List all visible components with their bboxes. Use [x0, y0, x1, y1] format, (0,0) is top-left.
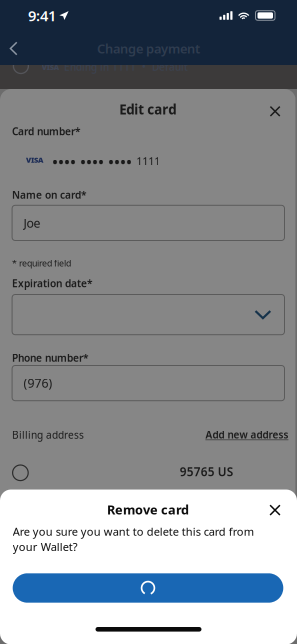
- staticText: Phone number*: [12, 351, 89, 365]
- staticText: Joe: [24, 214, 41, 231]
- staticText: Remove card: [107, 501, 189, 518]
- staticText: Card number*: [12, 124, 81, 138]
- button[interactable]: Add new address: [205, 428, 288, 441]
- staticText: (976): [24, 375, 53, 391]
- button[interactable]: Remove card: [13, 573, 283, 603]
- staticText: Edit card: [119, 100, 176, 118]
- staticText: Billing address: [12, 428, 84, 442]
- staticText: Expiration date*: [12, 276, 93, 290]
- staticText: 1111: [136, 154, 160, 168]
- button[interactable]: Close: [262, 497, 288, 523]
- button[interactable]: Back: [0, 35, 27, 61]
- staticText: * required field: [12, 257, 71, 269]
- staticText: 95765 US: [180, 464, 233, 480]
- staticText: Ending in 1111 • Default: [64, 60, 188, 74]
- staticText: Add new address: [205, 428, 288, 441]
- staticText: 9:41: [28, 5, 56, 25]
- staticText: VISA: [26, 155, 43, 165]
- staticText: Change payment: [97, 40, 200, 57]
- button[interactable]: Close: [262, 98, 288, 124]
- staticText: VISA: [42, 62, 59, 72]
- staticText: •••• •••• ••••: [52, 151, 132, 173]
- staticText: Are you sure you want to delete this car…: [13, 524, 254, 554]
- staticText: Name on card*: [12, 188, 87, 202]
